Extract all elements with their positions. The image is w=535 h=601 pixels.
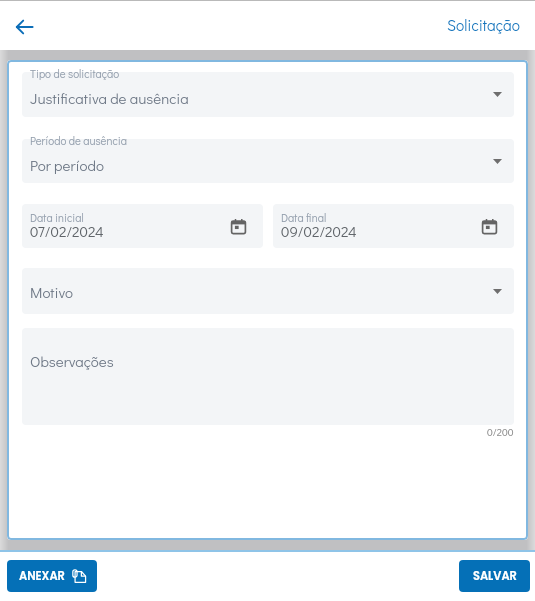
- button[interactable]: Selecionar data: [481, 218, 497, 234]
- staticText: Por período: [30, 155, 104, 175]
- button[interactable]: ANEXAR: [7, 560, 97, 592]
- button[interactable]: [22, 328, 514, 425]
- button[interactable]: [22, 72, 514, 117]
- staticText: Data inicial: [30, 210, 84, 225]
- staticText: Data final: [281, 210, 327, 225]
- staticText: 09/02/2024: [281, 221, 357, 241]
- button[interactable]: Solicitação: [447, 15, 520, 35]
- staticText: SALVAR: [473, 568, 517, 584]
- staticText: 07/02/2024: [30, 221, 104, 241]
- button[interactable]: Selecionar data: [230, 218, 246, 234]
- staticText: Período de ausência: [30, 133, 127, 148]
- staticText: Tipo de solicitação: [30, 66, 120, 81]
- button[interactable]: SALVAR: [459, 560, 530, 592]
- button[interactable]: [22, 268, 514, 314]
- staticText: ANEXAR: [19, 568, 65, 584]
- staticText: Motivo: [30, 282, 73, 302]
- staticText: 0/200: [487, 425, 514, 439]
- staticText: Observações: [30, 351, 114, 371]
- button[interactable]: [22, 139, 514, 183]
- staticText: Justificativa de ausência: [30, 88, 189, 108]
- button[interactable]: [22, 204, 263, 248]
- button[interactable]: Voltar: [8, 11, 40, 43]
- button[interactable]: [273, 204, 514, 248]
